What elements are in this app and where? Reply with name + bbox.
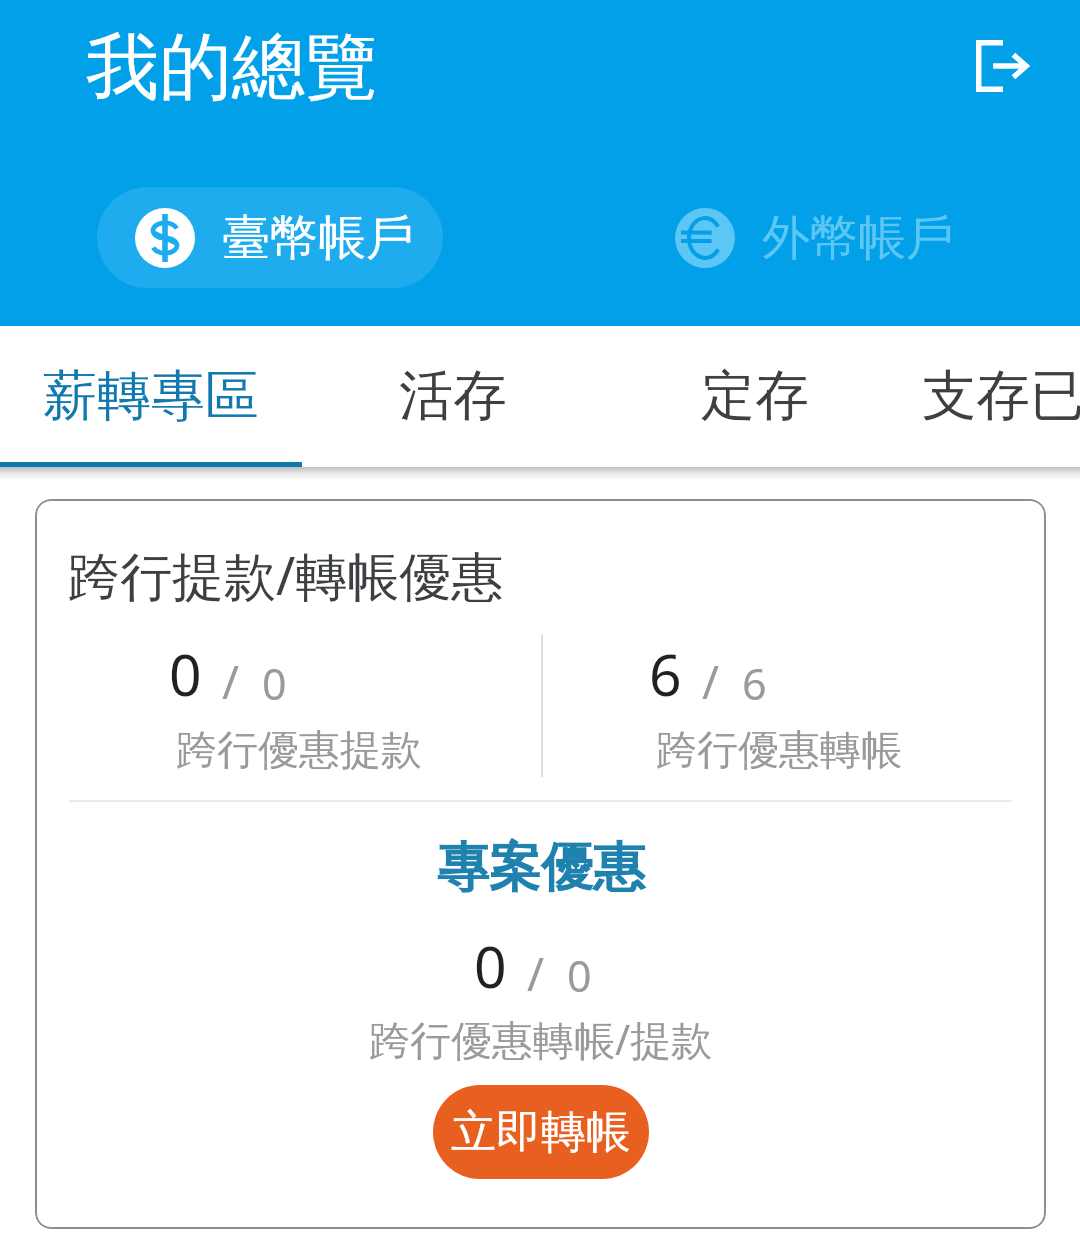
button[interactable]: 支存已結清 [906,326,1080,467]
staticText: 專案優惠 [437,835,645,901]
staticText: 0 [262,654,287,713]
staticText: 0 [169,635,202,713]
button[interactable]: 立即轉帳 [433,1085,649,1179]
button[interactable]: 臺幣帳戶 [97,187,443,288]
staticText: / [222,650,240,713]
staticText: 0 [474,927,507,1005]
staticText: 薪轉專區 [43,362,259,430]
staticText: 立即轉帳 [451,1104,631,1161]
staticText: 我的總覽 [86,22,378,114]
staticText: 跨行優惠轉帳/提款 [369,1011,713,1067]
staticText: 定存 [701,362,809,430]
staticText: 跨行優惠提款 [176,725,422,777]
staticText: 跨行優惠轉帳 [656,725,902,777]
button[interactable]: 活存 [302,326,604,467]
staticText: 支存已結清 [922,362,1080,430]
staticText: / [702,650,720,713]
button[interactable]: 外幣帳戶 [675,187,961,288]
staticText: 0 [567,946,592,1005]
button[interactable]: 薪轉專區 [0,326,302,467]
staticText: 6 [649,635,682,713]
staticText: 外幣帳戶 [762,208,954,268]
button[interactable]: Logout [962,26,1042,106]
staticText: 臺幣帳戶 [222,208,414,268]
staticText: 活存 [399,362,507,430]
staticText: 6 [742,654,767,713]
staticText: / [527,942,545,1005]
staticText: 跨行提款/轉帳優惠 [68,539,504,610]
button[interactable]: 定存 [604,326,906,467]
